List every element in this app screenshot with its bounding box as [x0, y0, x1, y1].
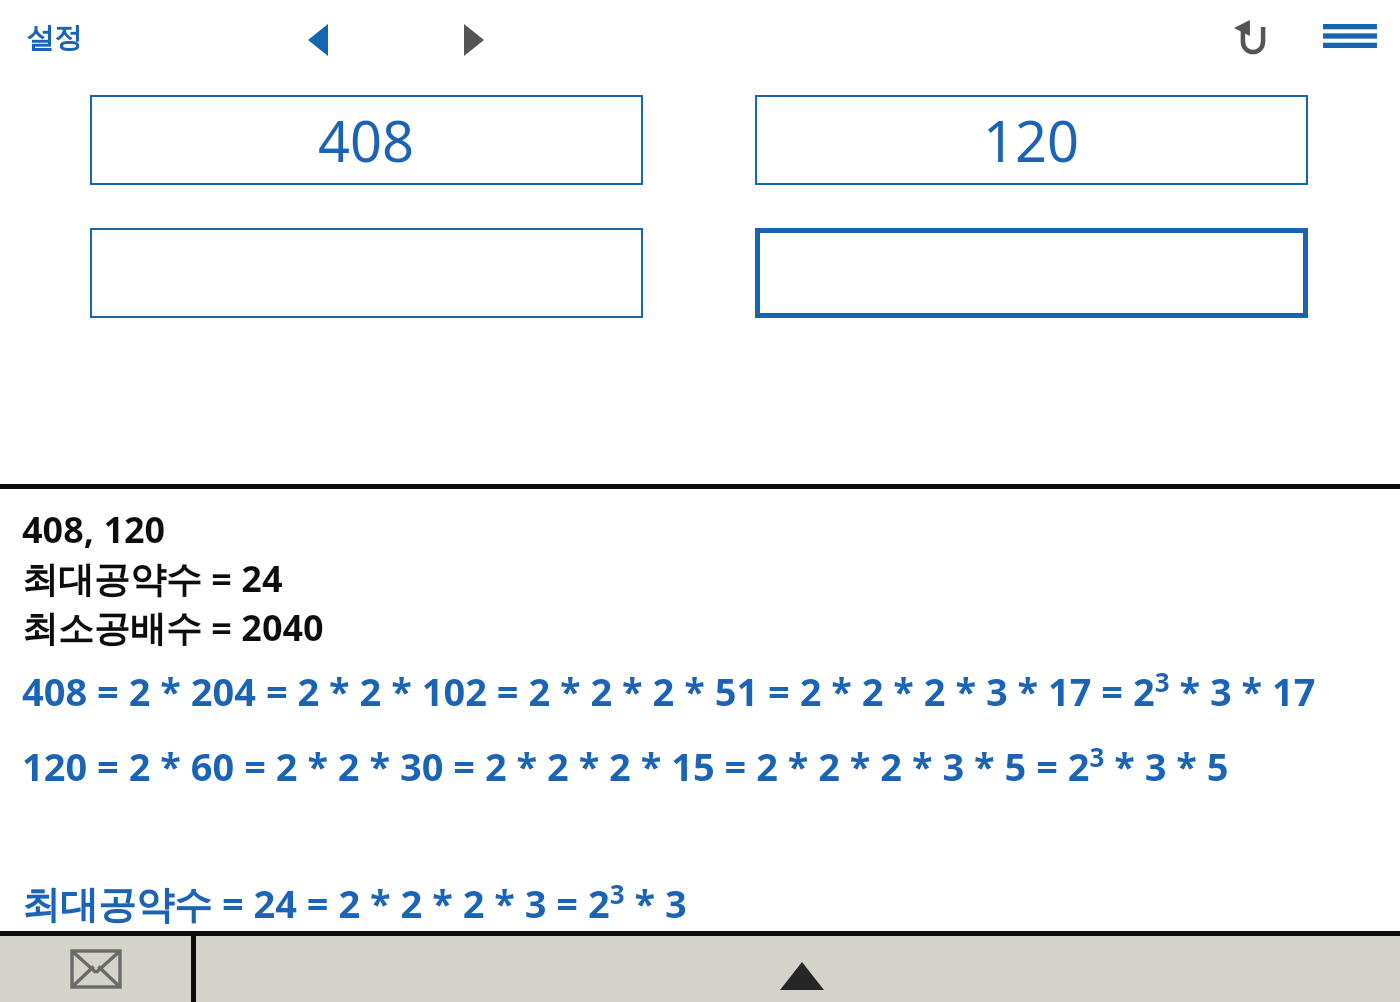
- staticText: 설정: [26, 20, 82, 55]
- staticText: 최대공약수 = 24: [22, 554, 283, 603]
- staticText: 408 = 2 * 204 = 2 * 2 * 102 = 2 * 2 * 2 …: [22, 664, 1316, 717]
- button[interactable]: [755, 228, 1308, 318]
- staticText: 120 = 2 * 60 = 2 * 2 * 30 = 2 * 2 * 2 * …: [22, 739, 1229, 792]
- staticText: 120: [983, 102, 1080, 178]
- button[interactable]: Expand: [196, 936, 1400, 1002]
- staticText: 408: [318, 102, 415, 178]
- button[interactable]: 408: [90, 95, 643, 185]
- staticText: 최소공배수 = 2040: [22, 603, 324, 652]
- button[interactable]: Menu: [1314, 8, 1386, 64]
- button[interactable]: [90, 228, 643, 318]
- button[interactable]: Undo: [1222, 6, 1284, 68]
- button[interactable]: 설정: [26, 20, 82, 55]
- button[interactable]: Next: [448, 14, 500, 66]
- button[interactable]: Previous: [292, 14, 344, 66]
- staticText: 408, 120: [22, 505, 166, 554]
- button[interactable]: 120: [755, 95, 1308, 185]
- staticText: 최대공약수 = 24 = 2 * 2 * 2 * 3 = 23 * 3: [22, 876, 687, 929]
- button[interactable]: Mail: [0, 936, 191, 1002]
